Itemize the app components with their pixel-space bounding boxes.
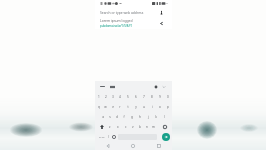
button[interactable]: i	[148, 102, 156, 112]
button[interactable]: k	[152, 112, 160, 122]
button[interactable]: 9	[156, 92, 164, 102]
staticText: o	[159, 105, 161, 109]
button[interactable]: Lorem ipsum logged	[95, 17, 172, 29]
button[interactable]: /	[106, 132, 111, 141]
staticText: q	[98, 105, 100, 109]
staticText: c	[125, 125, 127, 129]
staticText: 2	[105, 95, 107, 99]
button[interactable]: s	[106, 112, 113, 122]
staticText: 4	[119, 95, 121, 99]
button[interactable]: y	[132, 102, 140, 112]
button[interactable]: 5	[124, 92, 132, 102]
button[interactable]: c	[122, 122, 129, 132]
button[interactable]: Clipboard	[99, 83, 106, 90]
staticText: 1	[98, 95, 100, 99]
staticText: v	[132, 125, 134, 129]
staticText: a	[102, 115, 104, 119]
staticText: u	[143, 105, 145, 109]
button[interactable]: v	[129, 122, 136, 132]
staticText: t	[127, 105, 129, 109]
button[interactable]: h	[136, 112, 144, 122]
button[interactable]: w	[102, 102, 109, 112]
button[interactable]: o	[156, 102, 164, 112]
staticText: n	[146, 125, 148, 129]
button[interactable]: Recents	[146, 141, 172, 150]
staticText: Search or type web address	[100, 10, 144, 15]
button[interactable]: 0	[164, 92, 172, 102]
button[interactable]: g	[128, 112, 136, 122]
button[interactable]: z	[106, 122, 114, 132]
button[interactable]: 4	[116, 92, 124, 102]
staticText: w	[104, 105, 107, 109]
button[interactable]: e	[109, 102, 116, 112]
button[interactable]: 1	[95, 92, 102, 102]
staticText: m	[152, 125, 155, 129]
button[interactable]: Voice search	[158, 9, 164, 15]
staticText: 6	[135, 95, 137, 99]
button[interactable]: GIF	[109, 83, 116, 90]
button[interactable]: t	[124, 102, 132, 112]
button[interactable]: u	[140, 102, 148, 112]
button[interactable]: 6	[132, 92, 140, 102]
staticText: g	[131, 115, 133, 119]
button[interactable]: q	[95, 102, 102, 112]
staticText: y	[135, 105, 137, 109]
button[interactable]: Search or type web address	[95, 7, 172, 17]
staticText: pubdomai.so/w/1/5/8/f1	[100, 24, 133, 28]
staticText: 7	[143, 95, 145, 99]
staticText: h	[139, 115, 141, 119]
button[interactable]: ?123	[97, 132, 106, 141]
button[interactable]: 7	[140, 92, 148, 102]
button[interactable]: n	[143, 122, 150, 132]
button[interactable]: Emoji	[111, 132, 117, 141]
staticText: r	[119, 105, 121, 109]
staticText: k	[155, 115, 157, 119]
button[interactable]: p	[164, 102, 172, 112]
staticText: Lorem ipsum logged	[100, 18, 133, 23]
staticText: x	[117, 125, 119, 129]
staticText: p	[167, 105, 169, 109]
button[interactable]: 2	[102, 92, 109, 102]
staticText: 3	[112, 95, 114, 99]
button[interactable]: b	[136, 122, 143, 132]
staticText: 8	[151, 95, 153, 99]
staticText: /	[108, 135, 110, 139]
staticText: f	[123, 115, 125, 119]
button[interactable]: 3	[109, 92, 116, 102]
button[interactable]: f	[120, 112, 128, 122]
button[interactable]: Insert suggestion	[158, 20, 164, 26]
button[interactable]: 8	[148, 92, 156, 102]
staticText: e	[112, 105, 114, 109]
staticText: j	[148, 115, 149, 119]
button[interactable]: j	[144, 112, 152, 122]
staticText: l	[164, 115, 165, 119]
button[interactable]: Backspace	[157, 122, 172, 132]
staticText: b	[139, 125, 141, 129]
button[interactable]: Home	[120, 141, 146, 150]
button[interactable]: a	[99, 112, 106, 122]
staticText: z	[109, 125, 111, 129]
button[interactable]: r	[116, 102, 124, 112]
staticText: i	[152, 105, 153, 109]
staticText: s	[109, 115, 111, 119]
staticText: 0	[167, 95, 169, 99]
button[interactable]: x	[114, 122, 122, 132]
button[interactable]: More options	[161, 84, 167, 90]
button[interactable]: Back	[95, 141, 120, 150]
staticText: 5	[127, 95, 129, 99]
staticText: d	[116, 115, 118, 119]
button[interactable]: l	[160, 112, 168, 122]
staticText: 9	[159, 95, 161, 99]
button[interactable]: Shift	[97, 122, 106, 132]
staticText: ?123	[99, 135, 105, 138]
button[interactable]: m	[150, 122, 157, 132]
button[interactable]: d	[113, 112, 120, 122]
button[interactable]: Settings	[152, 83, 159, 90]
button[interactable]: Go	[162, 133, 170, 141]
